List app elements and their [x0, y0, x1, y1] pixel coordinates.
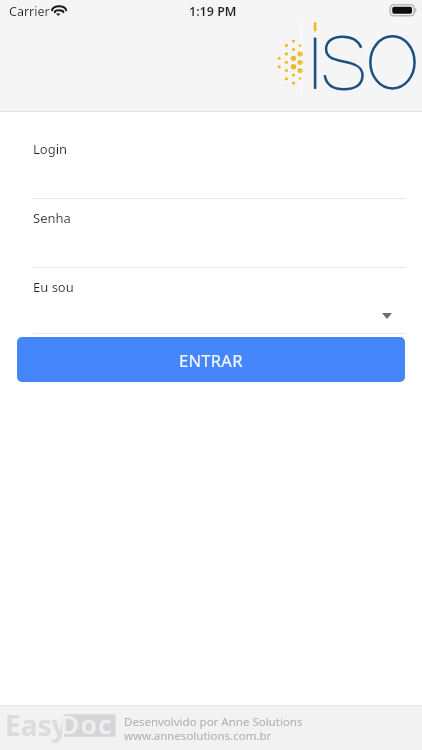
button[interactable]: Eu sou dropdown [33, 268, 389, 333]
button[interactable]: ENTRAR [17, 337, 405, 382]
button[interactable]: Senha [33, 199, 389, 267]
staticText: ENTRAR [179, 349, 243, 371]
staticText: Senha [33, 209, 71, 227]
staticText: 1:19 PM [189, 3, 237, 20]
staticText: Doc [60, 706, 113, 741]
staticText: Login [33, 140, 68, 158]
staticText: Easy [5, 706, 68, 744]
staticText: Eu sou [33, 278, 74, 296]
staticText: Carrier [9, 3, 50, 20]
staticText: Desenvolvido por Anne Solutions www.anne… [124, 714, 303, 743]
button[interactable]: Login [33, 130, 389, 198]
